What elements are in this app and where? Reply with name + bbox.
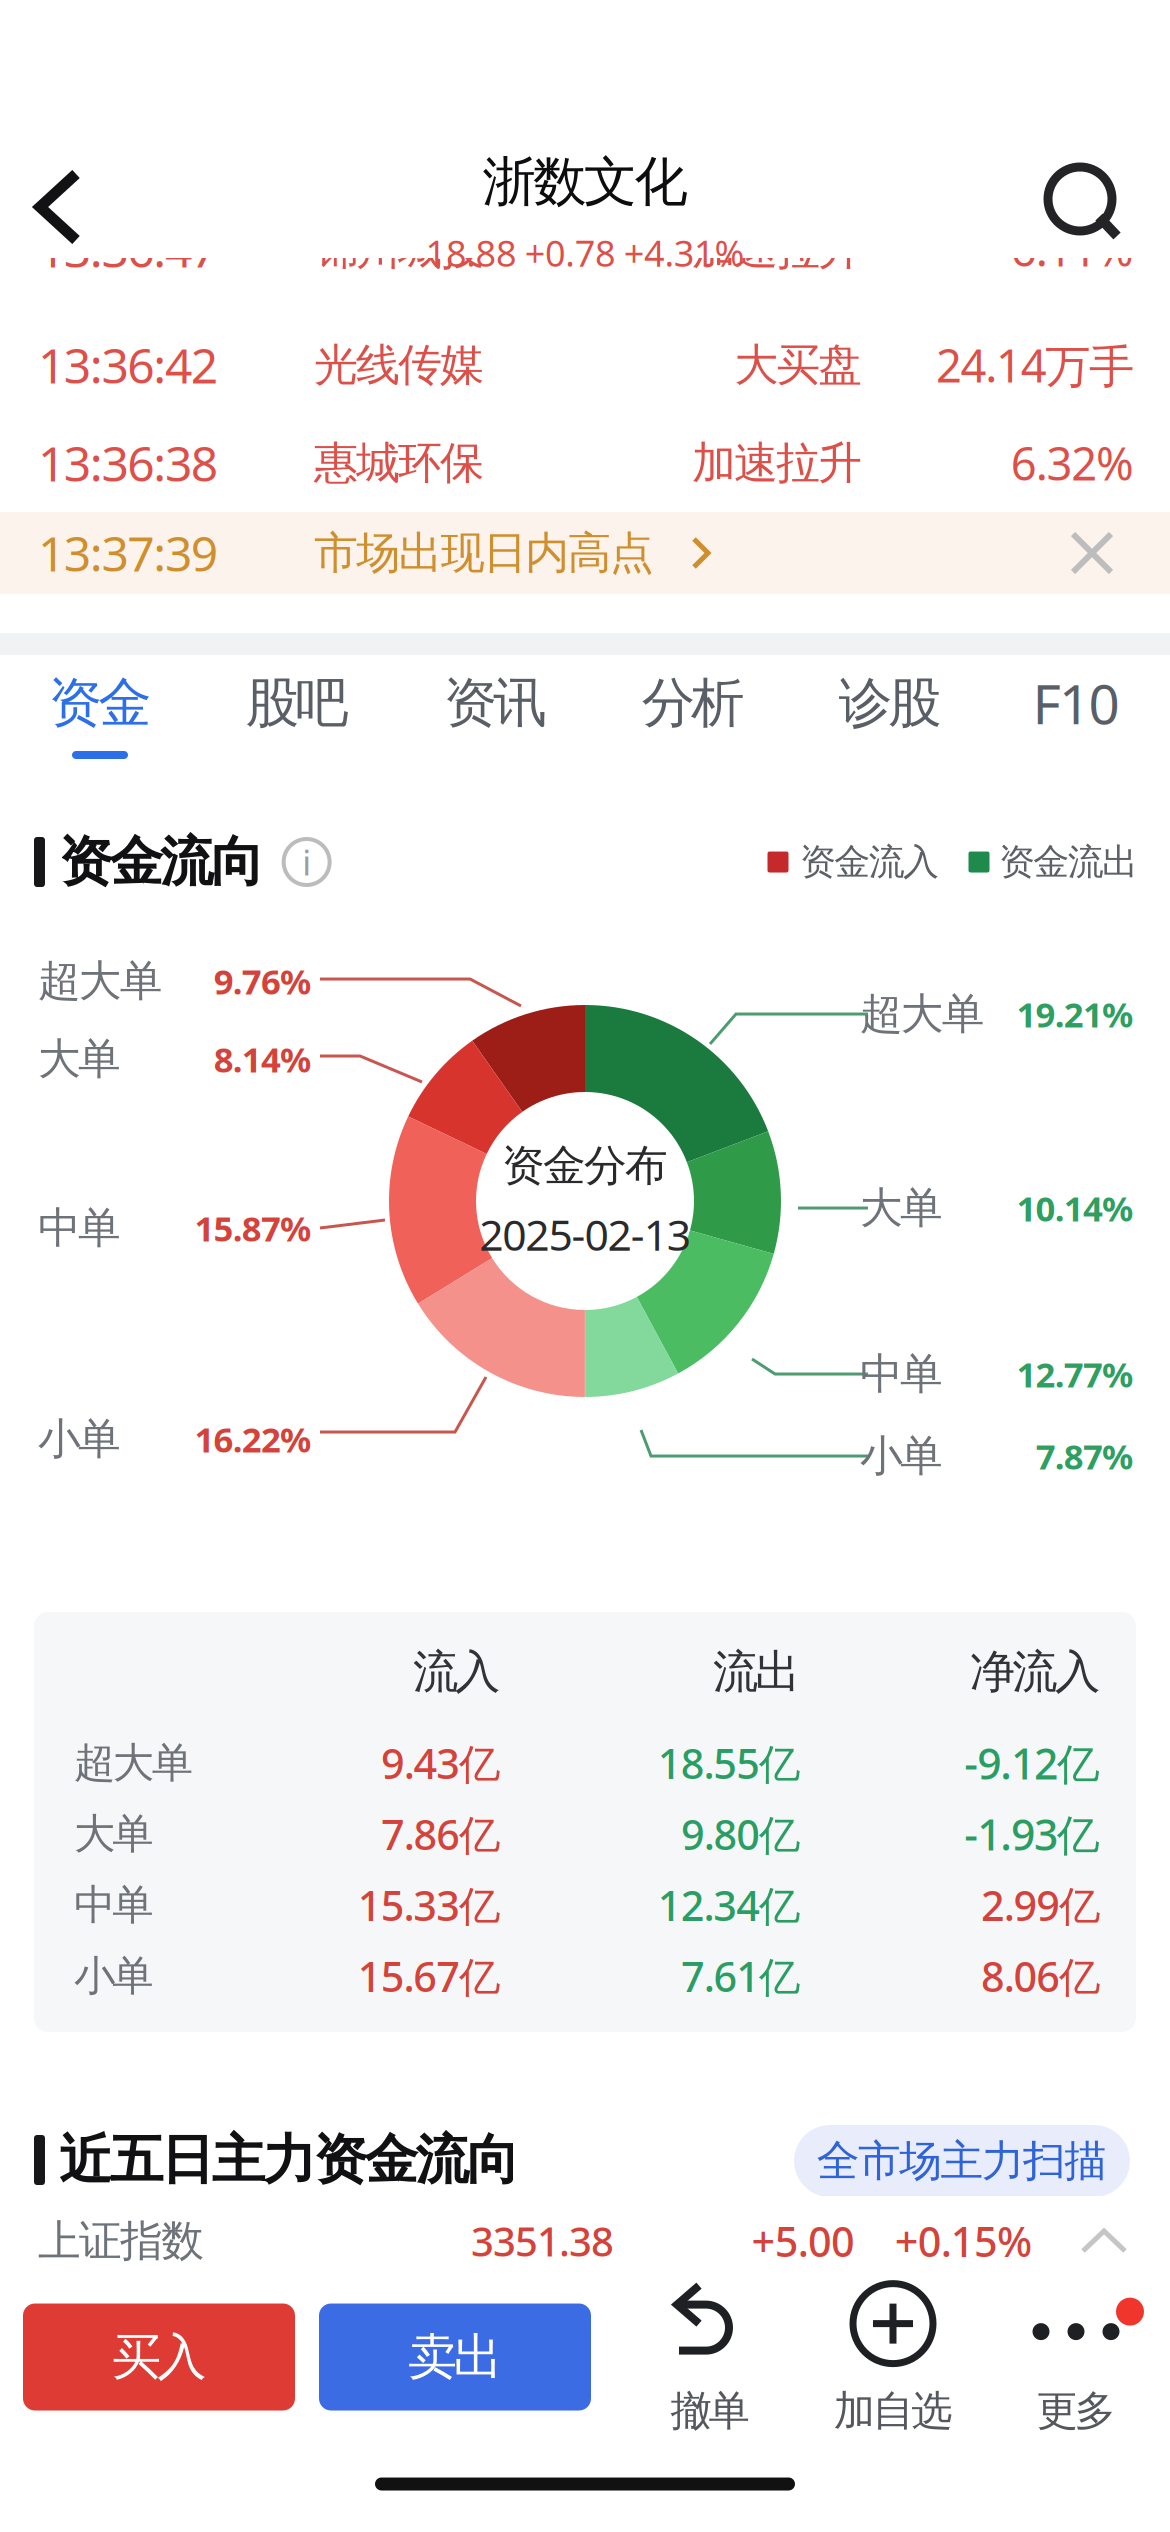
staticText: 8.06亿	[981, 1949, 1100, 2003]
button[interactable]: 撤单	[619, 2272, 801, 2442]
staticText: 加自选	[834, 2386, 952, 2436]
staticText: 惠城环保	[314, 436, 484, 490]
button[interactable]: 上证指数	[0, 0, 1170, 2532]
staticText: 15.33亿	[358, 1878, 500, 1932]
button[interactable]: Back	[0, 152, 150, 262]
staticText: 上证指数	[38, 2215, 204, 2267]
staticText: 超大单	[860, 988, 985, 1040]
staticText: 大单	[38, 1033, 121, 1085]
staticText: 19.21%	[1016, 991, 1133, 1037]
staticText: 大单	[860, 1182, 943, 1234]
staticText: 大买盘	[734, 338, 862, 392]
staticText: 6.32%	[1011, 433, 1134, 493]
staticText: 锦州城投	[314, 222, 484, 276]
staticText: 13:36:38	[38, 431, 218, 495]
staticText: 18.55亿	[658, 1736, 800, 1790]
staticText: 资金	[49, 670, 151, 736]
staticText: -9.12亿	[964, 1735, 1100, 1791]
staticText: 7.87%	[1036, 1433, 1133, 1479]
staticText: 小单	[38, 1413, 121, 1465]
staticText: 资金流入	[800, 840, 939, 884]
staticText: 浙数文化	[483, 149, 687, 215]
staticText: 9.43亿	[381, 1736, 500, 1790]
staticText: 12.34亿	[658, 1878, 800, 1932]
staticText: 7.86亿	[381, 1807, 500, 1861]
staticText: 2.99亿	[981, 1878, 1100, 1932]
button[interactable]: 13:36:38	[0, 0, 1170, 2532]
staticText: 卖出	[408, 2327, 502, 2387]
staticText: 流入	[413, 1644, 500, 1700]
staticText: 大单	[74, 1809, 153, 1859]
staticText: +0.15%	[895, 2214, 1032, 2268]
staticText: 中单	[74, 1880, 153, 1930]
staticText: -1.93亿	[964, 1806, 1100, 1862]
button[interactable]: 13:37:39	[0, 0, 1170, 2532]
staticText: 撤单	[670, 2386, 750, 2436]
staticText: 市场出现日内高点	[314, 526, 654, 580]
staticText: 7.61亿	[681, 1949, 800, 2003]
staticText: 小单	[74, 1951, 153, 2001]
staticText: 资金分布	[502, 1139, 668, 1192]
staticText: 8.14%	[214, 1036, 311, 1082]
staticText: 净流入	[970, 1644, 1100, 1700]
staticText: 10.14%	[1016, 1185, 1133, 1231]
staticText: 买入	[112, 2327, 206, 2387]
staticText: i	[302, 839, 311, 885]
staticText: 15.87%	[194, 1205, 311, 1251]
staticText: 加速拉升	[692, 222, 862, 276]
staticText: 9.80亿	[681, 1807, 800, 1861]
staticText: 16.22%	[194, 1416, 311, 1462]
button[interactable]: 加自选	[802, 2272, 984, 2442]
button[interactable]: 诊股	[802, 651, 978, 777]
button[interactable]: 更多	[985, 2272, 1167, 2442]
staticText: 小单	[860, 1430, 943, 1482]
staticText: 近五日主力资金流向	[59, 2127, 519, 2193]
staticText: 加速拉升	[692, 436, 862, 490]
staticText: +5.00	[752, 2214, 855, 2268]
staticText: 6.11%	[1011, 219, 1134, 279]
staticText: 2025-02-13	[479, 1206, 691, 1263]
button[interactable]: 资讯	[407, 651, 583, 777]
button[interactable]: 全市场主力扫描	[794, 2125, 1130, 2197]
button[interactable]: 资金	[12, 651, 188, 777]
staticText: 9.76%	[214, 958, 311, 1004]
staticText: 更多	[1036, 2386, 1116, 2436]
staticText: 资讯	[444, 670, 546, 736]
staticText: 超大单	[38, 955, 163, 1007]
staticText: 中单	[860, 1348, 943, 1400]
staticText: 3351.38	[471, 2214, 614, 2267]
staticText: 13:36:42	[38, 333, 218, 397]
staticText: 13:36:47	[38, 217, 218, 281]
button[interactable]: 买入	[23, 2303, 295, 2410]
button[interactable]: 股吧	[209, 651, 385, 777]
button[interactable]: 分析	[605, 651, 781, 777]
button[interactable]: 13:36:42	[0, 0, 1170, 2532]
staticText: 资金流向	[59, 829, 264, 895]
staticText: 超大单	[74, 1738, 193, 1788]
staticText: 资金流出	[999, 840, 1138, 884]
staticText: 13:37:39	[38, 521, 218, 585]
button[interactable]: F10	[988, 651, 1164, 777]
staticText: 18.88 +0.78 +4.31%	[425, 229, 744, 277]
staticText: 中单	[38, 1202, 121, 1254]
staticText: F10	[1032, 667, 1119, 739]
staticText: 流出	[713, 1644, 800, 1700]
staticText: 分析	[642, 670, 744, 736]
staticText: 24.14万手	[936, 335, 1134, 395]
staticText: 股吧	[246, 670, 348, 736]
staticText: 诊股	[839, 670, 941, 736]
staticText: 光线传媒	[314, 338, 484, 392]
button[interactable]: Search	[1032, 152, 1142, 262]
staticText: 12.77%	[1016, 1351, 1133, 1397]
staticText: 15.67亿	[358, 1949, 500, 2003]
button[interactable]: 卖出	[319, 2303, 591, 2410]
staticText: 全市场主力扫描	[817, 2135, 1107, 2187]
